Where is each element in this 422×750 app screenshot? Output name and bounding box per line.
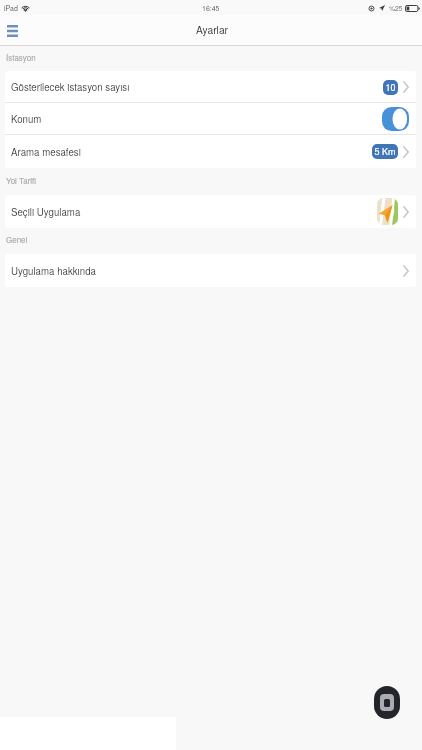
staticText: Gösterilecek istasyon sayısı [11, 80, 130, 94]
button[interactable]: Uygulama hakkında [5, 254, 416, 287]
staticText: Ayarlar [196, 22, 229, 37]
button[interactable]: Menu [2, 21, 22, 41]
staticText: Uygulama hakkında [11, 264, 96, 278]
staticText: 5 Km [374, 145, 396, 158]
staticText: iPad [4, 3, 18, 13]
button[interactable]: Gösterilecek istasyon sayısı [5, 71, 416, 103]
staticText: %25 [389, 3, 403, 13]
staticText: Arama mesafesi [11, 145, 81, 159]
staticText: 16:45 [202, 3, 220, 13]
staticText: Yol Tarifi [6, 175, 37, 186]
button[interactable]: Arama mesafesi [5, 135, 416, 168]
staticText: Genel [6, 234, 28, 245]
button[interactable]: Seçili Uygulama [5, 195, 416, 228]
staticText: Konum [11, 112, 42, 126]
button[interactable]: Device preview [374, 686, 400, 719]
button[interactable]: Konum [5, 103, 416, 135]
staticText: 10 [385, 81, 396, 94]
button[interactable] [382, 107, 409, 131]
staticText: İstasyon [6, 52, 36, 63]
staticText: Seçili Uygulama [11, 205, 81, 219]
